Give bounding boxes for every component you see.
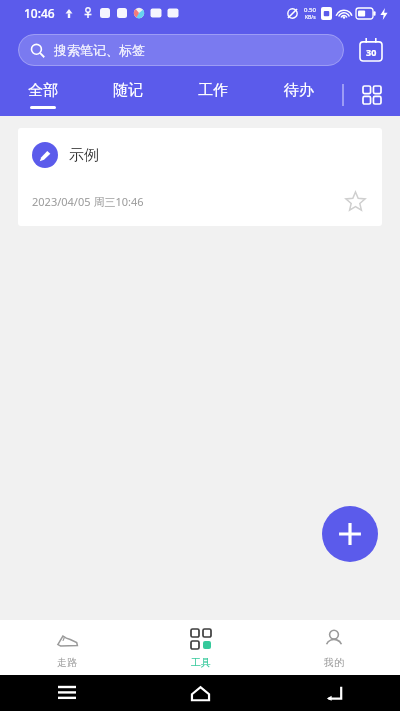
staticText: 我的: [324, 656, 344, 669]
button[interactable]: Grid view: [344, 74, 400, 116]
button[interactable]: 工具: [134, 620, 267, 675]
button[interactable]: 搜索笔记、标签: [18, 34, 344, 66]
staticText: 待办: [284, 81, 314, 100]
button[interactable]: Add note: [322, 506, 378, 562]
staticText: 2023/04/05 周三10:46: [32, 194, 144, 209]
staticText: 工具: [191, 656, 211, 669]
staticText: 全部: [28, 81, 58, 100]
button[interactable]: 走路: [0, 620, 134, 675]
staticText: 10:46: [24, 5, 55, 21]
button[interactable]: 全部: [0, 74, 85, 116]
staticText: 搜索笔记、标签: [54, 42, 145, 58]
staticText: 0.50: [304, 6, 316, 14]
staticText: 示例: [69, 146, 99, 165]
button[interactable]: Home: [134, 675, 267, 711]
staticText: KB/s: [305, 14, 316, 21]
staticText: 30: [366, 46, 377, 58]
staticText: 随记: [113, 81, 143, 100]
button[interactable]: 示例: [18, 128, 382, 226]
button[interactable]: 我的: [267, 620, 400, 675]
button[interactable]: Back: [267, 675, 400, 711]
staticText: 工作: [198, 81, 228, 100]
button[interactable]: 工作: [170, 74, 256, 116]
button[interactable]: Favorite: [342, 188, 368, 214]
button[interactable]: Recents: [0, 675, 134, 711]
button[interactable]: 待办: [256, 74, 342, 116]
staticText: 走路: [57, 656, 77, 669]
button[interactable]: Calendar: [356, 35, 386, 65]
button[interactable]: 随记: [85, 74, 170, 116]
